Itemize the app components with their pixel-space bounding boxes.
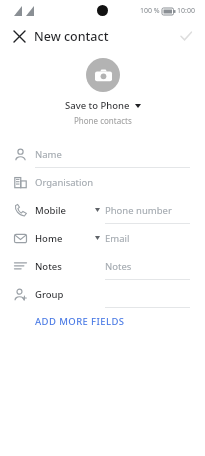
staticText: New contact: [34, 28, 109, 45]
button[interactable]: Home email: [0, 224, 205, 252]
staticText: Email: [105, 232, 130, 245]
staticText: 10:00: [177, 6, 195, 16]
button[interactable]: ADD MORE FIELDS: [0, 308, 205, 334]
staticText: Name: [35, 148, 62, 161]
button[interactable]: Name: [0, 140, 205, 168]
staticText: ADD MORE FIELDS: [35, 315, 125, 328]
staticText: Organisation: [35, 176, 94, 189]
button[interactable]: Notes: [0, 252, 205, 280]
button[interactable]: Group: [0, 280, 205, 308]
staticText: Phone number: [105, 204, 172, 217]
button[interactable]: Save: [175, 25, 197, 47]
button[interactable]: Close: [8, 25, 30, 47]
staticText: Notes: [105, 260, 132, 273]
button[interactable]: Save to Phone: [65, 99, 141, 112]
staticText: Save to Phone: [65, 99, 130, 112]
staticText: Mobile: [35, 204, 66, 217]
button[interactable]: Add photo: [86, 58, 120, 92]
staticText: Notes: [35, 260, 62, 273]
staticText: Phone contacts: [74, 115, 132, 126]
staticText: Group: [35, 288, 64, 301]
button[interactable]: Organisation: [0, 168, 205, 196]
staticText: Home: [35, 232, 63, 245]
staticText: 100 %: [140, 6, 160, 16]
button[interactable]: Mobile phone number: [0, 196, 205, 224]
